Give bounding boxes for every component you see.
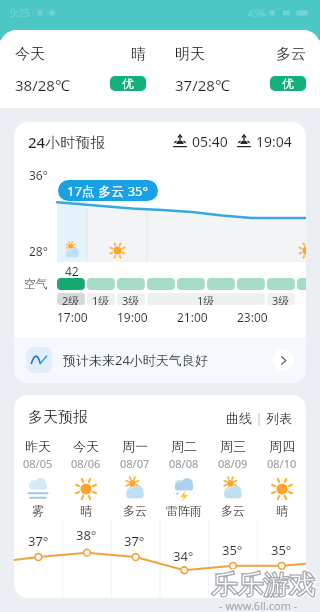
- staticText: 28°: [29, 243, 48, 259]
- staticText: 05:40: [192, 132, 228, 149]
- staticText: 今天: [73, 438, 99, 454]
- staticText: 多云: [123, 503, 147, 518]
- staticText: 36°: [29, 167, 48, 183]
- staticText: 明天: [175, 45, 205, 62]
- staticText: 多云: [276, 45, 306, 62]
- button[interactable]: 今天: [0, 30, 160, 108]
- staticText: 08/08: [169, 456, 199, 471]
- staticText: 晴: [276, 503, 288, 518]
- staticText: 晴: [80, 503, 92, 518]
- button[interactable]: 昨天: [14, 438, 62, 518]
- staticText: 昨天: [25, 438, 51, 454]
- staticText: 21:00: [177, 309, 207, 325]
- staticText: 08/05: [23, 456, 53, 471]
- staticText: 雷阵雨: [166, 503, 202, 518]
- staticText: 45%: [248, 7, 266, 19]
- staticText: |: [252, 409, 266, 427]
- staticText: 34°: [173, 547, 194, 565]
- staticText: 1级: [197, 293, 215, 305]
- staticText: 35°: [222, 541, 243, 559]
- staticText: 37/28℃: [175, 75, 230, 91]
- staticText: 24小时预报: [28, 132, 106, 149]
- other: Sunrise: [237, 134, 251, 148]
- button[interactable]: 曲线: [226, 410, 252, 426]
- staticText: 35°: [271, 541, 292, 559]
- staticText: 周三: [220, 438, 246, 454]
- staticText: 优: [282, 76, 294, 91]
- staticText: 雾: [32, 503, 44, 518]
- button[interactable]: 明天: [160, 30, 320, 108]
- staticText: 乐乐游戏: [211, 569, 315, 602]
- staticText: 37°: [28, 532, 49, 550]
- staticText: 空气: [24, 276, 48, 291]
- staticText: 3级: [272, 293, 290, 305]
- staticText: 37°: [124, 532, 145, 550]
- button[interactable]: 周一: [110, 438, 159, 518]
- button[interactable]: 周二: [159, 438, 208, 518]
- button[interactable]: 预计未来24小时天气良好: [14, 337, 306, 383]
- staticText: 38/28℃: [15, 75, 70, 91]
- staticText: 多天预报: [28, 408, 88, 427]
- staticText: 9:25: [10, 6, 30, 20]
- staticText: 周四: [269, 438, 295, 454]
- button[interactable]: 周四: [257, 438, 306, 518]
- staticText: 08/07: [120, 456, 150, 471]
- button[interactable]: 周三: [208, 438, 257, 518]
- staticText: 2级: [62, 293, 80, 305]
- staticText: 23:00: [237, 309, 267, 325]
- button[interactable]: 今天: [62, 438, 110, 518]
- staticText: 预计未来24小时天气良好: [63, 351, 208, 369]
- staticText: 38°: [76, 526, 97, 544]
- staticText: 乐乐游戏: [211, 569, 315, 602]
- staticText: - www.6ll.com -: [219, 598, 298, 612]
- staticText: 晴: [131, 45, 146, 62]
- staticText: 周一: [122, 438, 148, 454]
- staticText: 08/10: [267, 456, 297, 471]
- button[interactable]: 列表: [266, 410, 292, 426]
- staticText: 08/09: [218, 456, 248, 471]
- staticText: 优: [122, 76, 134, 91]
- staticText: 1级: [92, 293, 110, 305]
- staticText: 周二: [171, 438, 197, 454]
- other: Sunrise: [173, 134, 187, 148]
- staticText: 多云: [221, 503, 245, 518]
- staticText: 42: [65, 263, 79, 279]
- staticText: 19:00: [117, 309, 147, 325]
- staticText: 今天: [15, 45, 45, 62]
- staticText: 17:00: [57, 309, 87, 325]
- staticText: 17点 多云 35°: [67, 182, 149, 200]
- staticText: 19:04: [256, 132, 292, 149]
- staticText: 08/06: [71, 456, 101, 471]
- staticText: 3级: [122, 293, 140, 305]
